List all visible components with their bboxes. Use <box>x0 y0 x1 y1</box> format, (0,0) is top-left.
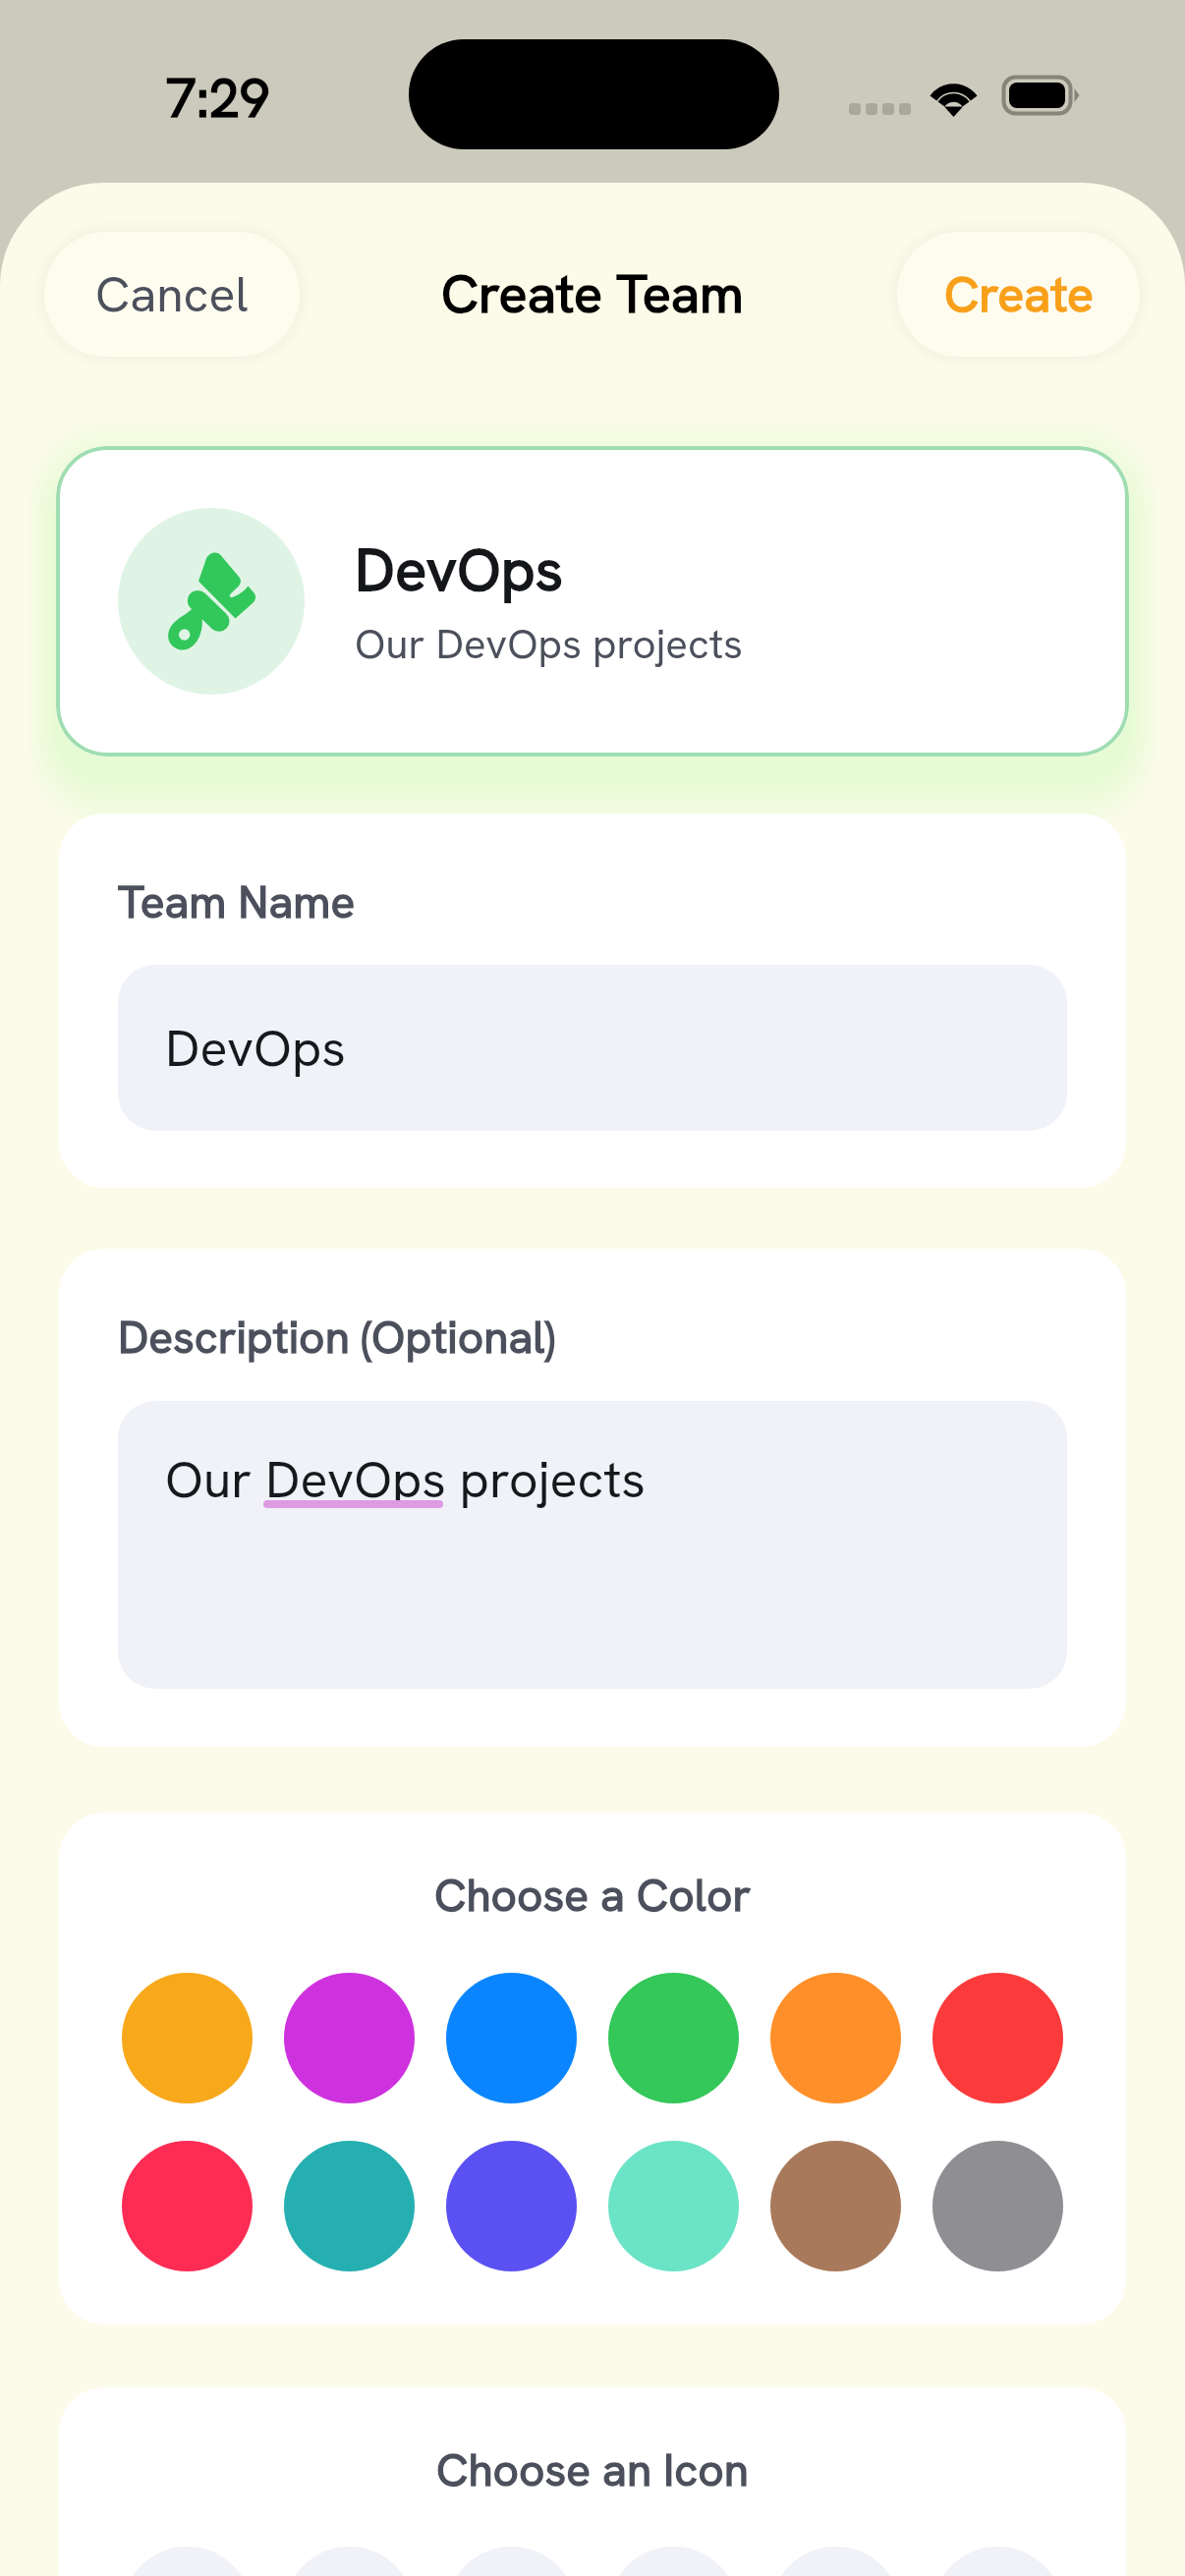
button[interactable]: Color 1 <box>122 2141 253 2271</box>
staticText: DevOps <box>355 532 564 608</box>
button[interactable]: Color 2 <box>284 2141 415 2271</box>
staticText: Team Name <box>118 872 356 931</box>
button[interactable]: Color 6 <box>932 2141 1063 2271</box>
button[interactable]: Icon 6 <box>932 2547 1063 2576</box>
button[interactable]: Create <box>897 232 1140 357</box>
staticText: Description (Optional) <box>118 1308 555 1367</box>
staticText: Choose a Color <box>434 1866 752 1925</box>
staticText: Our DevOps projects <box>355 617 743 671</box>
button[interactable]: Cancel <box>44 232 300 357</box>
staticText: DevOps <box>165 1015 346 1082</box>
button[interactable]: Icon 3 <box>446 2547 577 2576</box>
button[interactable]: DevOps <box>118 965 1067 1131</box>
staticText: Create Team <box>441 259 744 328</box>
button[interactable]: Our DevOps projects <box>118 1401 1067 1689</box>
button[interactable]: Icon 1 <box>122 2547 253 2576</box>
button[interactable]: Icon 2 <box>284 2547 415 2576</box>
button[interactable]: Color 5 <box>770 2141 901 2271</box>
button[interactable]: Icon 4 <box>608 2547 739 2576</box>
button[interactable]: DevOps <box>56 446 1129 756</box>
button[interactable]: Color 4 <box>608 2141 739 2271</box>
button[interactable]: Color 2 <box>284 1973 415 2103</box>
button[interactable]: Color 6 <box>932 1973 1063 2103</box>
staticText: Cancel <box>95 262 249 326</box>
button[interactable]: Color 5 <box>770 1973 901 2103</box>
staticText: Create <box>944 262 1094 326</box>
button[interactable]: Color 3 <box>446 1973 577 2103</box>
staticText: 7:29 <box>166 63 270 134</box>
button[interactable]: Color 1 <box>122 1973 253 2103</box>
button[interactable]: Icon 5 <box>770 2547 901 2576</box>
staticText: Choose an Icon <box>436 2440 749 2499</box>
staticText: Our DevOps projects <box>165 1446 646 1513</box>
button[interactable]: Color 3 <box>446 2141 577 2271</box>
button[interactable]: Color 4 <box>608 1973 739 2103</box>
